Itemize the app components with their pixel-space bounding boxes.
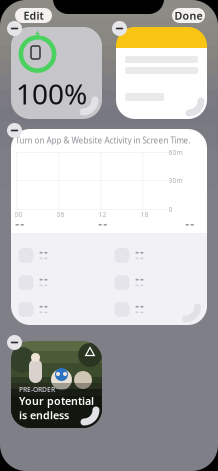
staticText: 0 <box>168 205 172 214</box>
button[interactable]: Done <box>172 8 205 23</box>
button[interactable]: Edit <box>15 8 52 23</box>
staticText: 12 <box>98 210 106 219</box>
staticText: 06 <box>56 210 64 219</box>
staticText: Edit <box>23 8 43 23</box>
button[interactable]: Remove widget <box>7 21 22 36</box>
staticText: 60m <box>168 148 182 157</box>
staticText: PRE-ORDER <box>19 385 55 394</box>
button[interactable]: Remove widget <box>7 123 22 138</box>
staticText: 100% <box>16 75 87 112</box>
staticText: Your potential <box>19 394 94 408</box>
staticText: Done <box>174 8 202 23</box>
button[interactable]: Remove widget <box>7 335 22 350</box>
staticText: 00 <box>14 210 22 219</box>
button[interactable] <box>116 27 207 119</box>
button[interactable]: Remove widget <box>112 21 127 36</box>
button[interactable]: Turn on App & Website Activity in Screen… <box>11 129 207 325</box>
staticText: 18 <box>140 210 148 219</box>
button[interactable]: 100% <box>11 27 102 119</box>
staticText: is endless <box>19 408 69 422</box>
staticText: Turn on App & Website Activity in Screen… <box>15 135 190 146</box>
button[interactable]: PRE-ORDER <box>11 341 102 428</box>
staticText: 30m <box>168 176 182 185</box>
